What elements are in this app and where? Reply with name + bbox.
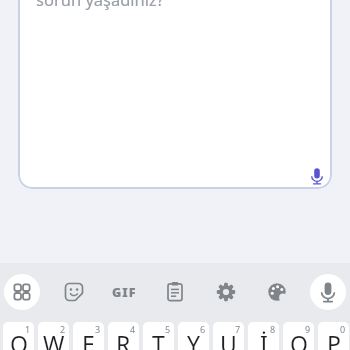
- button[interactable]: [310, 274, 346, 310]
- staticText: 6: [200, 323, 206, 335]
- button[interactable]: O: [283, 322, 314, 350]
- button[interactable]: P: [318, 322, 349, 350]
- button[interactable]: Y: [178, 322, 209, 350]
- button[interactable]: [4, 274, 40, 310]
- staticText: 4: [130, 323, 136, 335]
- staticText: 9: [305, 323, 311, 335]
- staticText: GIF: [112, 284, 137, 301]
- staticText: P: [327, 328, 341, 350]
- staticText: 3: [95, 323, 101, 335]
- button[interactable]: [18, 0, 332, 189]
- button[interactable]: U: [213, 322, 244, 350]
- staticText: 1: [25, 323, 31, 335]
- staticText: 0: [340, 323, 346, 335]
- button[interactable]: [208, 274, 244, 310]
- staticText: Q: [10, 328, 28, 350]
- button[interactable]: Q: [3, 322, 34, 350]
- staticText: İ: [260, 328, 268, 350]
- staticText: T: [152, 328, 165, 350]
- button[interactable]: [106, 274, 142, 310]
- staticText: sorun yaşadınız?: [36, 0, 164, 10]
- button[interactable]: E: [73, 322, 104, 350]
- staticText: E: [82, 328, 95, 350]
- button[interactable]: [56, 274, 92, 310]
- button[interactable]: R: [108, 322, 139, 350]
- staticText: O: [290, 328, 308, 350]
- staticText: R: [116, 328, 131, 350]
- button[interactable]: GIF: [106, 283, 142, 301]
- staticText: 8: [270, 323, 276, 335]
- button[interactable]: [259, 274, 295, 310]
- button[interactable]: [157, 274, 193, 310]
- staticText: U: [220, 328, 237, 350]
- button[interactable]: W: [38, 322, 69, 350]
- button[interactable]: T: [143, 322, 174, 350]
- staticText: 2: [60, 323, 66, 335]
- staticText: W: [43, 328, 65, 350]
- button[interactable]: İ: [248, 322, 279, 350]
- staticText: 7: [235, 323, 241, 335]
- staticText: 5: [165, 323, 171, 335]
- staticText: Y: [187, 328, 201, 350]
